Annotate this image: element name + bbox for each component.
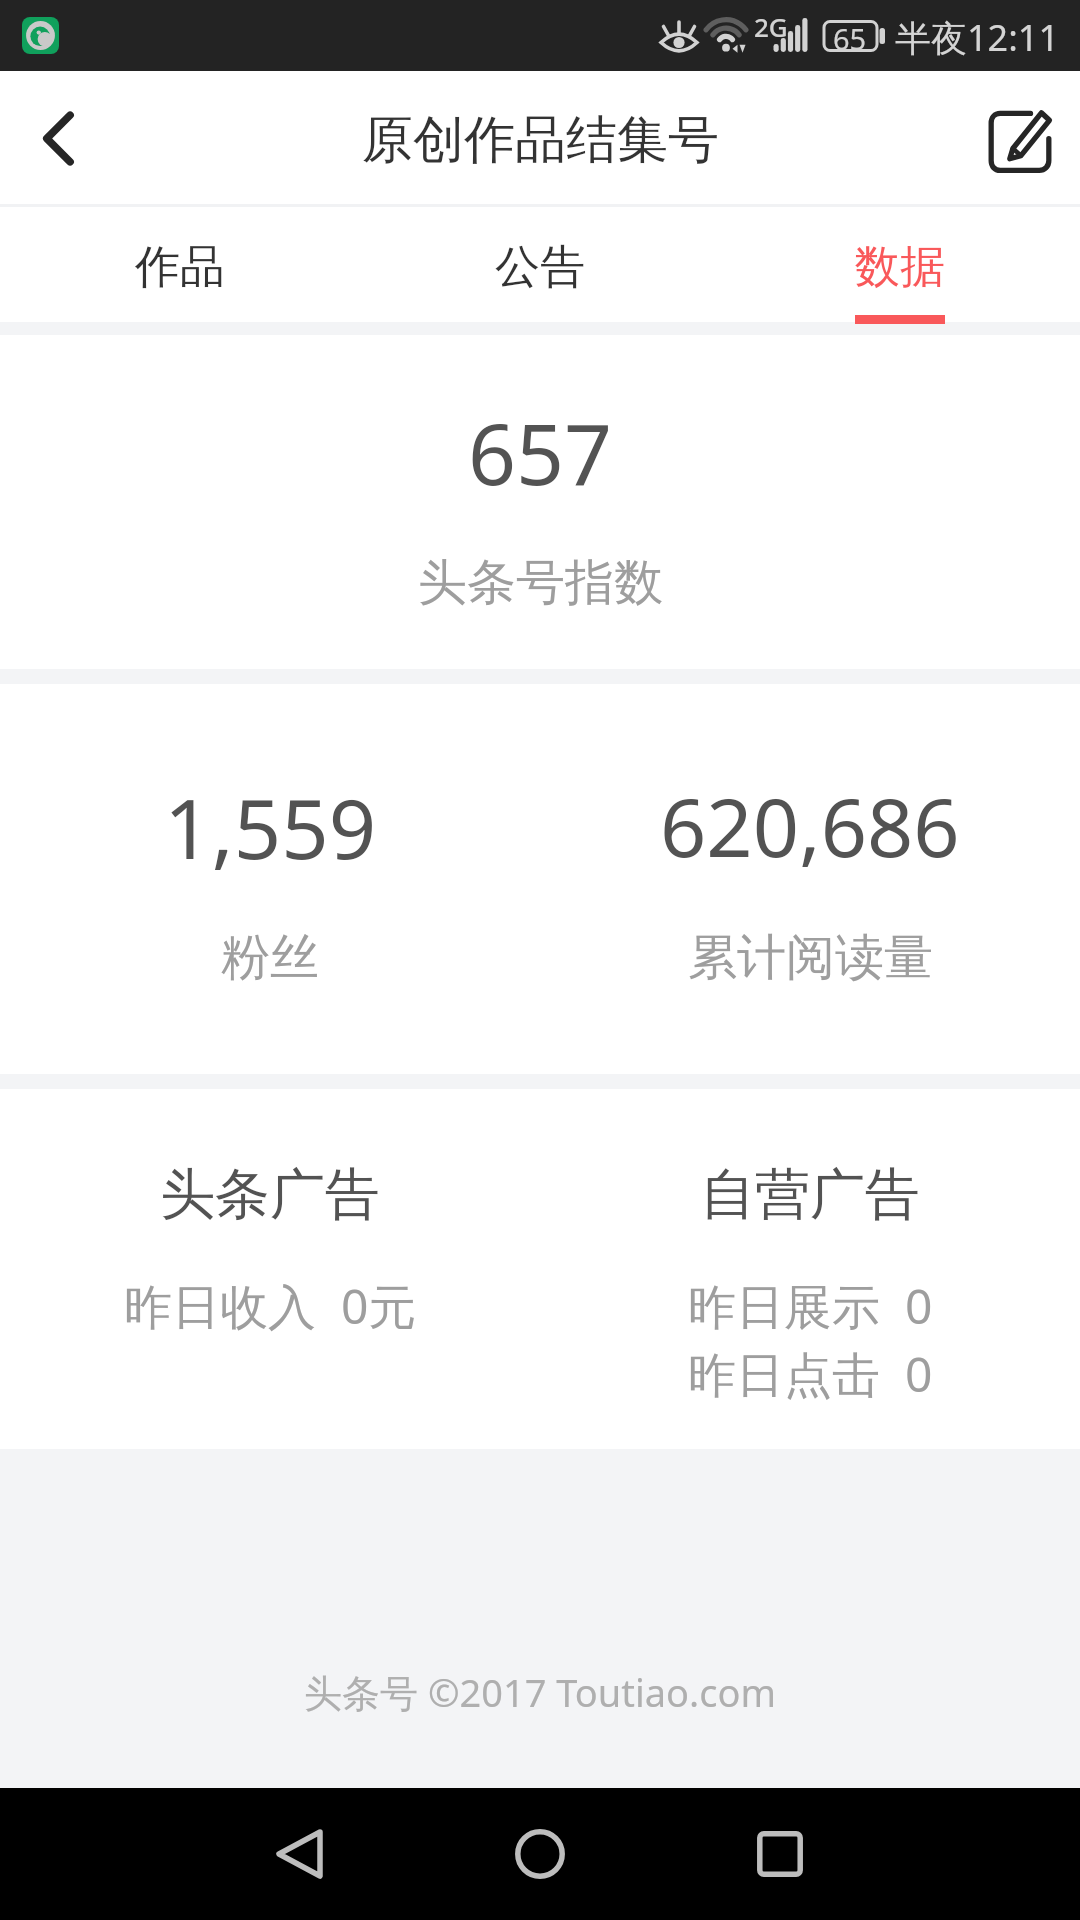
button[interactable]: 自营广告: [540, 1089, 1080, 1449]
button[interactable]: Recents: [720, 1794, 840, 1914]
staticText: 粉丝: [221, 927, 319, 989]
staticText: 昨日收入 0元: [124, 1273, 417, 1339]
staticText: 头条号指数: [418, 552, 663, 614]
button[interactable]: 作品: [0, 207, 360, 322]
staticText: 1,559: [164, 770, 377, 883]
staticText: 数据: [855, 239, 945, 296]
button[interactable]: Edit: [964, 85, 1076, 197]
staticText: 头条号 ©2017 Toutiao.com: [304, 1666, 777, 1718]
staticText: 作品: [135, 239, 225, 296]
button[interactable]: 1,559: [0, 684, 540, 1074]
staticText: 公告: [495, 239, 585, 296]
staticText: 半夜12:11: [895, 13, 1060, 62]
button[interactable]: 头条广告: [0, 1089, 540, 1449]
staticText: 原创作品结集号: [362, 108, 719, 172]
staticText: 昨日展示 0: [688, 1273, 933, 1339]
staticText: 657: [468, 395, 613, 509]
button[interactable]: 数据: [720, 207, 1080, 322]
staticText: 2G: [754, 9, 788, 44]
staticText: 620,686: [660, 770, 960, 880]
staticText: 自营广告: [700, 1160, 920, 1229]
staticText: 累计阅读量: [688, 927, 933, 989]
staticText: 昨日点击 0: [688, 1341, 933, 1407]
button[interactable]: Back: [3, 82, 115, 194]
button[interactable]: 公告: [360, 207, 720, 322]
button[interactable]: Home: [480, 1794, 600, 1914]
button[interactable]: 620,686: [540, 684, 1080, 1074]
staticText: 65: [833, 19, 867, 58]
staticText: 头条广告: [160, 1160, 380, 1229]
button[interactable]: Back: [240, 1794, 360, 1914]
